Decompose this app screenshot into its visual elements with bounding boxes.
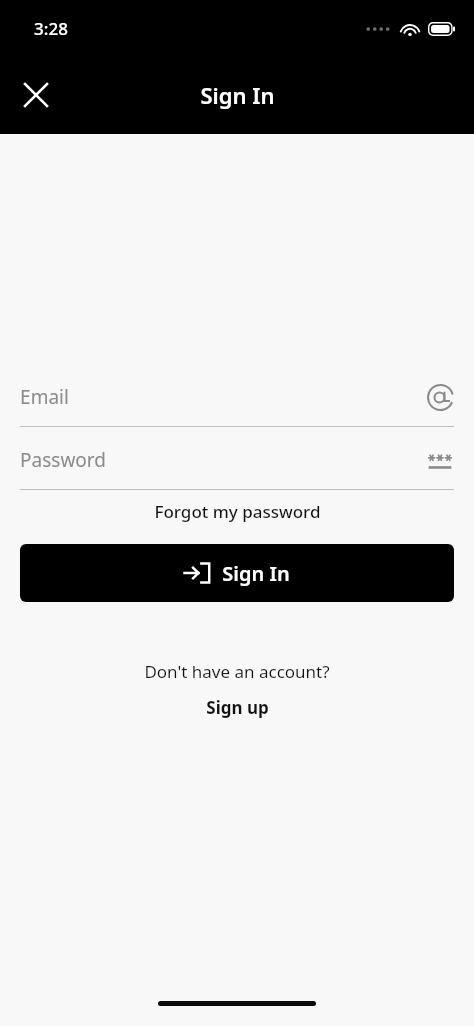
staticText: Don't have an account? xyxy=(144,660,330,683)
button[interactable]: Password xyxy=(20,431,454,489)
button[interactable]: Close xyxy=(14,73,58,117)
staticText: Sign In xyxy=(222,560,290,587)
staticText: Forgot my password xyxy=(154,500,321,523)
staticText: Sign up xyxy=(206,696,269,719)
button[interactable]: Sign In xyxy=(20,544,454,602)
staticText: 3:28 xyxy=(34,17,68,40)
button[interactable]: Email xyxy=(20,368,454,426)
button[interactable]: Sign up xyxy=(20,688,454,726)
staticText: Email xyxy=(20,384,69,410)
staticText: Password xyxy=(20,447,106,473)
button[interactable]: Forgot my password xyxy=(20,490,454,532)
staticText: Sign In xyxy=(200,80,275,110)
